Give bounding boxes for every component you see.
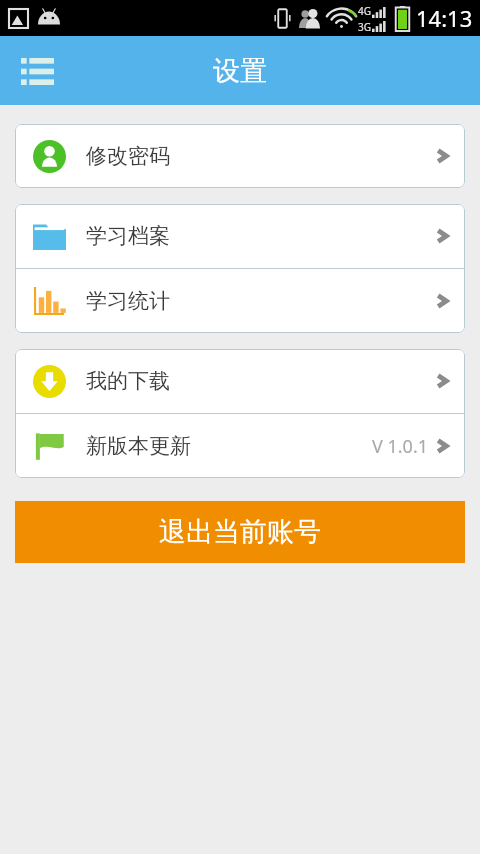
staticText: 3G (358, 20, 371, 32)
staticText: 4G (358, 4, 371, 18)
button[interactable]: Menu (17, 51, 57, 91)
button[interactable]: 修改密码 (15, 124, 465, 188)
button[interactable]: 我的下载 (15, 349, 465, 413)
button[interactable]: 学习统计 (15, 269, 465, 333)
staticText: 退出当前账号 (159, 515, 321, 549)
button[interactable]: 退出当前账号 (15, 501, 465, 563)
button[interactable]: 学习档案 (15, 204, 465, 268)
staticText: V 1.0.1 (372, 434, 429, 459)
staticText: 新版本更新 (86, 433, 191, 459)
button[interactable]: 新版本更新 (15, 414, 465, 478)
staticText: 修改密码 (86, 143, 170, 169)
staticText: 设置 (213, 54, 267, 88)
staticText: 14:13 (416, 3, 473, 33)
staticText: 学习档案 (86, 223, 170, 249)
staticText: 我的下载 (86, 368, 170, 394)
staticText: 学习统计 (86, 288, 170, 314)
